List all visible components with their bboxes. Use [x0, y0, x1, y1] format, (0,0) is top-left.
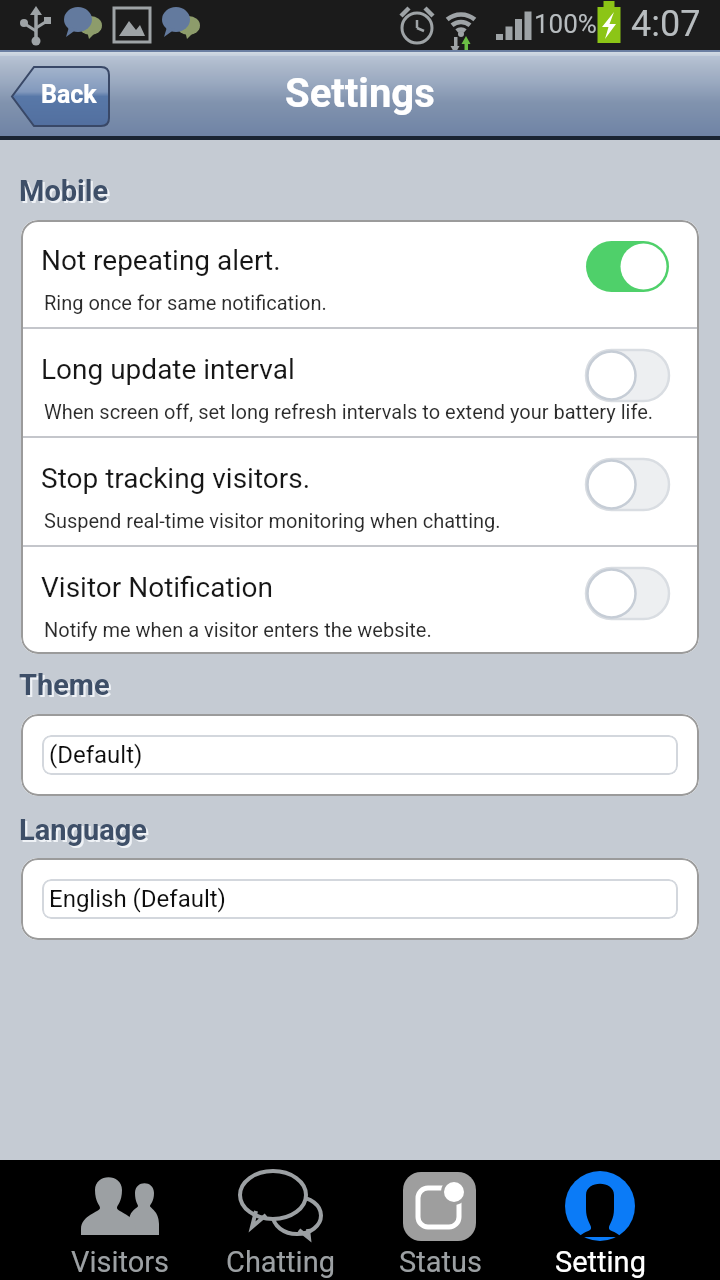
staticText: 100%: [534, 9, 597, 39]
button[interactable]: Status: [360, 1160, 520, 1280]
staticText: Not repeating alert.: [41, 244, 281, 277]
staticText: English (Default): [49, 885, 226, 913]
staticText: Setting: [555, 1245, 646, 1279]
staticText: Long update interval: [41, 353, 295, 386]
staticText: Language: [19, 813, 148, 847]
button[interactable]: Long update interval: [21, 329, 699, 436]
staticText: (Default): [49, 741, 143, 769]
staticText: 4:07: [631, 3, 701, 45]
button[interactable]: Back: [12, 67, 109, 126]
staticText: Theme: [21, 670, 112, 704]
staticText: Mobile: [19, 174, 109, 208]
button[interactable]: English (Default): [21, 858, 699, 940]
staticText: Mobile: [21, 176, 111, 210]
staticText: Chatting: [226, 1245, 335, 1279]
staticText: Settings: [285, 70, 435, 117]
button[interactable]: Setting: [520, 1160, 680, 1280]
staticText: Status: [399, 1245, 482, 1279]
staticText: Stop tracking visitors.: [41, 462, 311, 495]
staticText: Theme: [19, 668, 110, 702]
staticText: Notify me when a visitor enters the webs…: [44, 618, 432, 641]
button[interactable]: Chatting: [200, 1160, 360, 1280]
staticText: Visitors: [71, 1245, 170, 1279]
button[interactable]: Not repeating alert.: [21, 220, 699, 327]
button[interactable]: Switch off: [586, 459, 669, 510]
button[interactable]: Visitor Notification: [21, 547, 699, 654]
staticText: When screen off, set long refresh interv…: [44, 400, 654, 423]
button[interactable]: Switch on: [586, 241, 669, 292]
button[interactable]: Switch off: [586, 568, 669, 619]
button[interactable]: Switch off: [586, 350, 669, 401]
button[interactable]: (Default): [21, 714, 699, 796]
staticText: Back: [41, 80, 97, 109]
staticText: Ring once for same notification.: [44, 291, 327, 314]
staticText: Language: [21, 815, 150, 849]
button[interactable]: Visitors: [40, 1160, 200, 1280]
staticText: Visitor Notification: [41, 571, 273, 604]
staticText: Suspend real-time visitor monitoring whe…: [44, 509, 501, 532]
button[interactable]: Stop tracking visitors.: [21, 438, 699, 545]
